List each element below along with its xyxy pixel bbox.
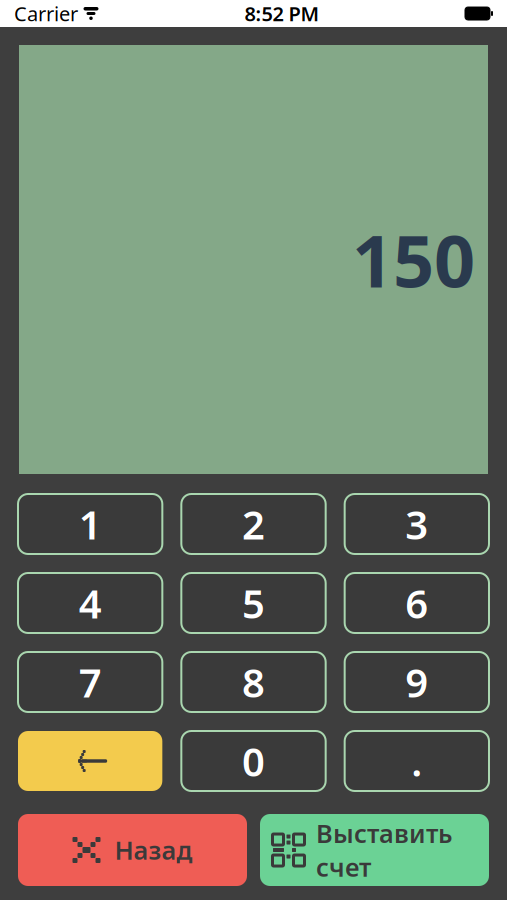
button[interactable]: 6 — [345, 573, 489, 633]
button[interactable]: 9 — [345, 652, 489, 712]
staticText: 3 — [405, 497, 428, 550]
staticText: 8:52 PM — [244, 0, 319, 27]
staticText: 150 — [352, 212, 475, 307]
staticText: Carrier — [14, 0, 78, 27]
staticText: 9 — [405, 655, 428, 708]
button[interactable]: 1 — [18, 494, 162, 554]
staticText: 5 — [242, 576, 265, 629]
staticText: 8 — [242, 655, 265, 708]
button[interactable]: Назад — [18, 814, 247, 886]
staticText: 7 — [79, 655, 102, 708]
staticText: 1 — [79, 497, 102, 550]
button[interactable]: Backspace — [18, 731, 162, 791]
staticText: Назад — [114, 833, 192, 867]
button[interactable]: Выставить счет — [260, 814, 489, 886]
button[interactable]: 2 — [181, 494, 326, 554]
button[interactable]: 4 — [18, 573, 162, 633]
staticText: 4 — [79, 576, 102, 629]
button[interactable]: 5 — [181, 573, 326, 633]
staticText: 6 — [405, 576, 428, 629]
button[interactable]: 3 — [345, 494, 489, 554]
staticText: Выставить счет — [316, 816, 453, 884]
staticText: . — [411, 734, 422, 787]
button[interactable]: . — [345, 731, 489, 791]
staticText: 2 — [242, 497, 265, 550]
staticText: 0 — [242, 734, 265, 787]
button[interactable]: 7 — [18, 652, 162, 712]
button[interactable]: 0 — [181, 731, 326, 791]
button[interactable]: 8 — [181, 652, 326, 712]
